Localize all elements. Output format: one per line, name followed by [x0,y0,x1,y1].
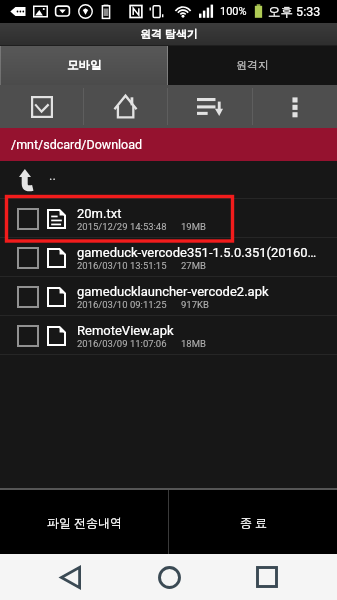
staticText: 100% [220,5,247,18]
button[interactable]: More options [253,85,337,128]
staticText: 19MB [181,221,206,232]
button[interactable]: .. [0,161,337,198]
staticText: 원격지 [236,58,269,72]
button[interactable]: Recents [239,554,295,600]
button[interactable]: Sort [168,85,252,128]
button[interactable]: gameduck-vercode351-1.5.0.351(20160… [0,238,337,277]
staticText: 모바일 [67,58,102,72]
button[interactable]: gameducklauncher-vercode2.apk [0,277,337,316]
button[interactable]: 종 료 [169,490,337,554]
staticText: 2015/12/29 14:53:48 [77,221,167,232]
staticText: 27MB [181,260,206,271]
staticText: /mnt/sdcard/Download [11,137,143,152]
staticText: 917KB [181,299,209,310]
staticText: RemoteView.apk [77,323,174,338]
staticText: 2016/03/10 09:11:25 [77,299,167,310]
button[interactable]: 모바일 [0,45,168,85]
button[interactable]: Select all [0,85,83,128]
staticText: 2016/03/10 13:51:15 [77,260,167,271]
staticText: gameducklauncher-vercode2.apk [77,284,269,299]
staticText: 2016/03/09 11:07:06 [77,338,167,349]
button[interactable]: Home [141,554,197,600]
staticText: .. [49,168,56,183]
button[interactable]: 원격지 [168,45,337,85]
staticText: 오후 5:33 [268,4,321,20]
button[interactable]: /mnt/sdcard/Download [0,128,337,161]
button[interactable]: 파일 전송내역 [0,490,168,554]
staticText: gameduck-vercode351-1.5.0.351(20160… [77,245,317,260]
button[interactable]: Home [84,85,167,128]
button[interactable]: RemoteView.apk [0,316,337,355]
button[interactable]: Back [42,554,98,600]
staticText: 18MB [181,338,206,349]
staticText: 원격 탐색기 [140,27,198,41]
button[interactable]: 20m.txt [0,199,337,238]
staticText: 종 료 [240,515,267,530]
staticText: 20m.txt [77,206,122,221]
staticText: 파일 전송내역 [47,515,122,530]
